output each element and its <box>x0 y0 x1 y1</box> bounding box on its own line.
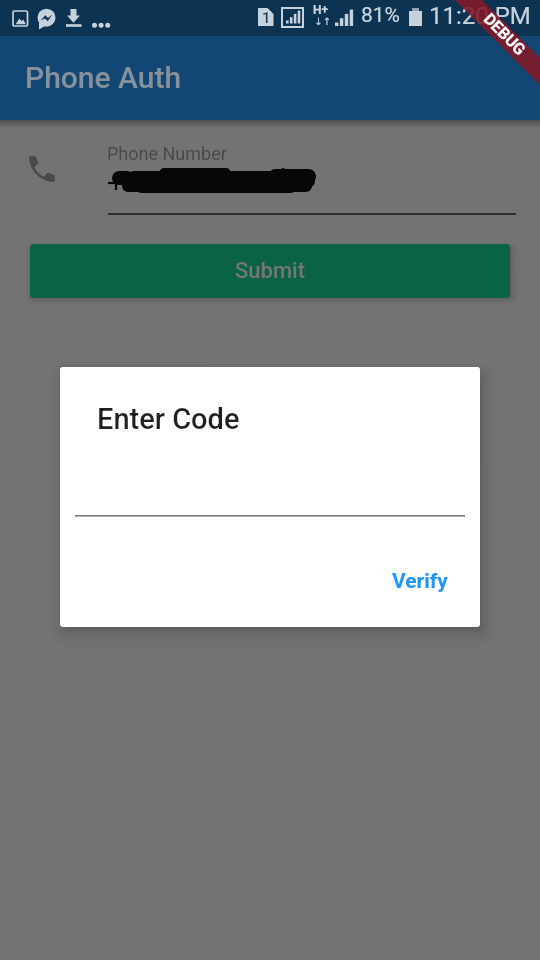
staticText: Submit <box>235 258 306 284</box>
staticText: Enter Code <box>97 402 240 436</box>
button[interactable]: Verify <box>376 559 464 603</box>
staticText: Verify <box>392 569 448 594</box>
other: Phone <box>25 152 59 186</box>
staticText: Phone Number <box>107 143 227 164</box>
staticText: Phone Auth <box>25 60 182 95</box>
staticText: 81% <box>361 3 400 28</box>
staticText: 1 <box>262 9 271 27</box>
staticText: H+ <box>313 3 329 17</box>
staticText: 11:20 PM <box>429 2 531 30</box>
button[interactable]: Submit <box>30 244 510 298</box>
staticText: ↓↑ <box>314 16 331 28</box>
staticText: DEBUG <box>480 9 530 60</box>
